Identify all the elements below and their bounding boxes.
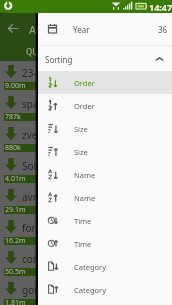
staticText: 787k (5, 112, 21, 120)
button[interactable]: goro (0, 278, 172, 305)
staticText: Time (74, 216, 92, 226)
button[interactable]: Order (38, 71, 172, 94)
button[interactable]: Order (38, 94, 172, 117)
staticText: goro (22, 283, 45, 297)
staticText: Category (74, 285, 106, 295)
staticText: 50.5m (5, 267, 26, 275)
button[interactable]: Time (38, 232, 172, 255)
staticText: Year (73, 24, 90, 35)
staticText: 36 (158, 24, 168, 35)
staticText: Order (74, 78, 95, 88)
button[interactable]: zvez (0, 123, 172, 154)
staticText: for_a (22, 221, 46, 235)
button[interactable]: Category (38, 255, 172, 278)
button[interactable]: Category (38, 278, 172, 301)
staticText: Size (74, 124, 88, 134)
staticText: Size (74, 147, 88, 157)
staticText: Solid (22, 159, 45, 173)
staticText: spa (22, 97, 39, 111)
staticText: 880k (5, 143, 21, 151)
staticText: Category (74, 262, 106, 272)
button[interactable]: Solid (0, 154, 172, 185)
staticText: Al (29, 22, 39, 37)
staticText: 9.00m (5, 81, 26, 89)
button[interactable]: com (0, 247, 172, 278)
staticText: Order (74, 101, 95, 111)
staticText: 16.2m (5, 236, 26, 244)
staticText: 23-0 (22, 66, 43, 80)
button[interactable]: Name (38, 163, 172, 186)
staticText: Name (74, 170, 96, 180)
staticText: 14:47 (149, 1, 172, 13)
button[interactable]: Year (38, 13, 172, 45)
other: Back (8, 24, 18, 33)
staticText: com (22, 252, 43, 266)
staticText: Name (74, 193, 96, 203)
staticText: avril (22, 190, 42, 204)
button[interactable]: Sorting (38, 46, 172, 71)
button[interactable]: for_a (0, 216, 172, 247)
staticText: 4.01m (5, 174, 26, 182)
button[interactable]: Size (38, 117, 172, 140)
button[interactable]: Size (38, 140, 172, 163)
button[interactable]: Time (38, 209, 172, 232)
button[interactable]: Name (38, 186, 172, 209)
staticText: QUE (26, 46, 43, 57)
staticText: Sorting (45, 54, 73, 65)
staticText: 1.81m (5, 298, 26, 305)
button[interactable]: 23-0 (0, 61, 172, 92)
button[interactable]: spa (0, 92, 172, 123)
staticText: Time (74, 239, 92, 249)
other: Collapse sorting (155, 55, 164, 63)
button[interactable]: avril (0, 185, 172, 216)
staticText: 29.1m (5, 205, 26, 213)
staticText: zvez (22, 128, 43, 142)
